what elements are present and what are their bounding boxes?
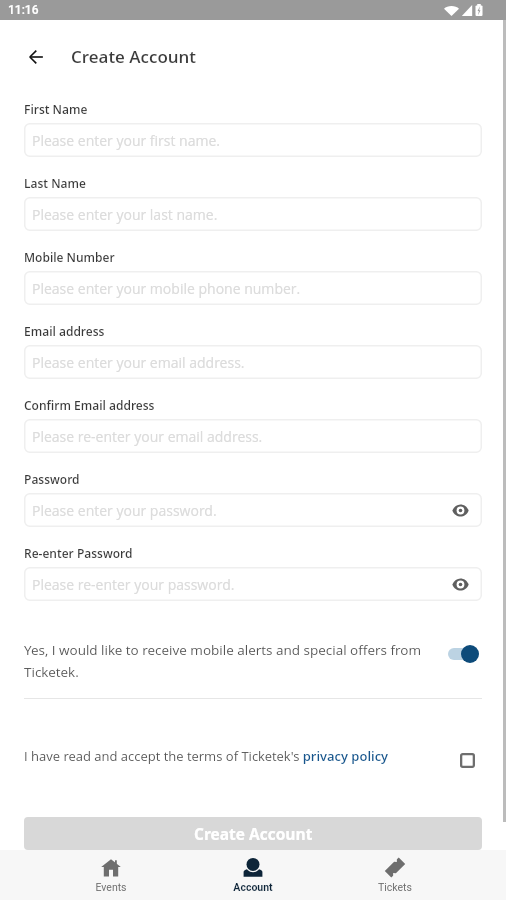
staticText: Events [95, 881, 127, 893]
staticText: Mobile Number [24, 249, 115, 265]
button[interactable]: Receive alerts toggle [448, 641, 482, 667]
button[interactable]: Please enter your mobile phone number. [24, 271, 482, 305]
staticText: Yes, I would like to receive mobile aler… [24, 641, 429, 681]
staticText: Create Account [71, 45, 197, 68]
staticText: Email address [24, 323, 105, 339]
staticText: Create Account [194, 823, 313, 844]
button[interactable]: Please enter your first name. [24, 123, 482, 157]
button[interactable]: Please enter your email address. [24, 345, 482, 379]
button[interactable]: Accept terms checkbox [460, 743, 482, 769]
staticText: Please enter your last name. [32, 205, 218, 224]
staticText: Tickets [378, 881, 412, 893]
staticText: Last Name [24, 175, 86, 191]
button[interactable]: Tickets [324, 850, 466, 900]
staticText: Password [24, 471, 80, 487]
button[interactable]: Please re-enter your email address. [24, 419, 482, 453]
staticText: Please re-enter your email address. [32, 427, 263, 446]
button[interactable]: Please enter your password. [24, 493, 482, 527]
staticText: Confirm Email address [24, 397, 155, 413]
staticText: I have read and accept the terms of Tick… [24, 747, 446, 765]
button[interactable]: Create Account [24, 817, 482, 850]
staticText: Please enter your first name. [32, 131, 221, 150]
button[interactable]: Back [13, 34, 59, 80]
button[interactable]: Events [40, 850, 182, 900]
staticText: Re-enter Password [24, 545, 133, 561]
button[interactable]: Show password [449, 573, 471, 595]
staticText: Please enter your password. [32, 501, 217, 520]
button[interactable]: Please re-enter your password. [24, 567, 482, 601]
button[interactable]: Account [182, 850, 324, 900]
staticText: Please enter your mobile phone number. [32, 279, 301, 298]
button[interactable]: Please enter your last name. [24, 197, 482, 231]
staticText: Please enter your email address. [32, 353, 245, 372]
staticText: 11:16 [8, 3, 39, 17]
button[interactable]: Show password [449, 499, 471, 521]
staticText: Please re-enter your password. [32, 575, 235, 594]
staticText: Account [233, 881, 273, 893]
staticText: First Name [24, 101, 88, 117]
